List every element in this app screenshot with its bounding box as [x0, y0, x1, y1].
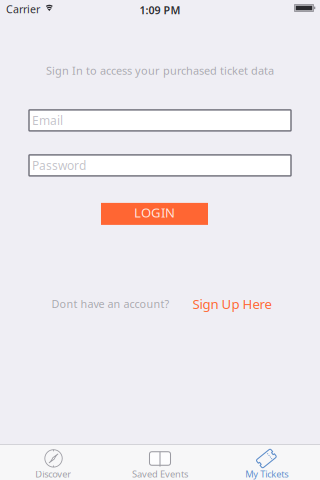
staticText: Sign In to access your purchased ticket …	[46, 63, 274, 78]
staticText: LOGIN	[134, 203, 175, 221]
staticText: Discover	[35, 468, 71, 480]
staticText: My Tickets	[245, 468, 288, 480]
button[interactable]: Password	[29, 155, 291, 176]
button[interactable]: Email	[29, 110, 291, 131]
button[interactable]: Sign Up Here	[192, 295, 271, 313]
button[interactable]: LOGIN	[101, 203, 208, 225]
button[interactable]: My Tickets	[213, 444, 320, 480]
staticText: Saved Events	[132, 468, 188, 480]
button[interactable]: Discover	[0, 444, 107, 480]
staticText: 1:09 PM	[139, 3, 180, 17]
staticText: Email	[32, 112, 63, 128]
staticText: Password	[32, 157, 86, 173]
button[interactable]: Saved Events	[107, 444, 213, 480]
staticText: Sign Up Here	[192, 295, 271, 313]
staticText: Carrier	[6, 2, 40, 16]
staticText: Dont have an account?	[51, 296, 169, 311]
